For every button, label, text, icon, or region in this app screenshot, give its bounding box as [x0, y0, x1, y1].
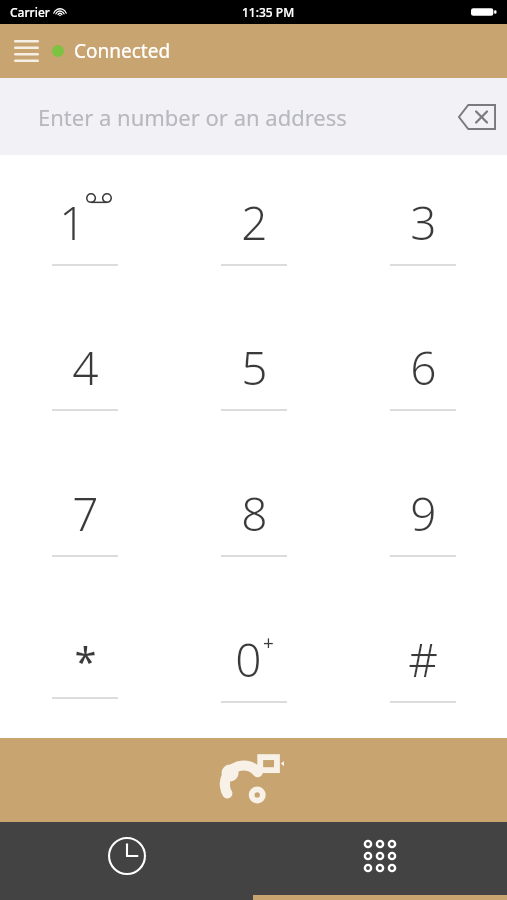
staticText: 8 [241, 482, 268, 545]
staticText: 6 [410, 336, 437, 399]
button[interactable]: 4 [0, 300, 169, 446]
staticText: 3 [410, 191, 437, 254]
staticText: Connected [74, 38, 171, 64]
button[interactable]: 5 [169, 300, 338, 446]
button[interactable]: * [0, 592, 169, 738]
staticText: * [74, 633, 97, 687]
staticText: + [263, 630, 274, 656]
button[interactable]: 7 [0, 446, 169, 592]
button[interactable]: # [338, 592, 507, 738]
staticText: Carrier [10, 4, 50, 20]
button[interactable]: Enter a number or an address [0, 78, 507, 155]
staticText: 4 [72, 336, 99, 399]
button[interactable]: Video call [0, 738, 507, 822]
button[interactable]: Recents [0, 822, 253, 900]
staticText: 9 [410, 482, 437, 545]
button[interactable]: 6 [338, 300, 507, 446]
button[interactable]: 2 [169, 155, 338, 300]
button[interactable]: Keypad [253, 822, 507, 900]
staticText: # [408, 628, 438, 691]
button[interactable]: 9 [338, 446, 507, 592]
button[interactable]: 1 [0, 155, 169, 300]
button[interactable]: Connected [52, 38, 171, 64]
staticText: 7 [72, 482, 99, 545]
button[interactable]: Menu [0, 25, 52, 77]
staticText: 1 [59, 191, 86, 254]
button[interactable]: 0 [169, 592, 338, 738]
button[interactable]: Backspace [447, 87, 507, 147]
staticText: 2 [241, 191, 268, 254]
staticText: Enter a number or an address [38, 102, 447, 132]
button[interactable]: 3 [338, 155, 507, 300]
staticText: 0 [235, 628, 262, 691]
button[interactable]: 8 [169, 446, 338, 592]
staticText: 11:35 PM [242, 4, 295, 20]
staticText: 5 [241, 336, 268, 399]
